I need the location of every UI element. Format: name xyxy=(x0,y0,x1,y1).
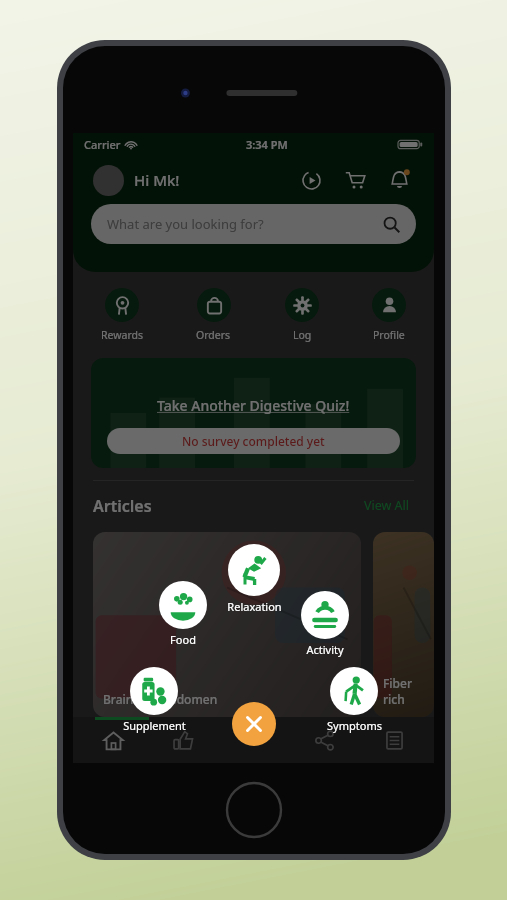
staticText: View All xyxy=(364,497,410,514)
button[interactable]: Share xyxy=(302,717,346,763)
staticText: Orders xyxy=(196,328,231,342)
staticText: Hi Mk! xyxy=(134,170,180,190)
button[interactable]: View All xyxy=(360,493,414,518)
staticText: Carrier xyxy=(84,137,121,152)
button[interactable] xyxy=(130,667,178,715)
button[interactable]: Orders xyxy=(192,288,235,342)
staticText: No survey completed yet xyxy=(182,433,325,449)
staticText: Rewards xyxy=(101,328,143,342)
staticText: Take Another Digestive Quiz! xyxy=(157,396,350,415)
staticText: Fiber rich xyxy=(383,675,424,707)
staticText: Log xyxy=(293,328,312,342)
button[interactable]: Cart xyxy=(340,165,370,195)
button[interactable] xyxy=(330,667,378,715)
button[interactable]: Close menu xyxy=(232,702,276,746)
button[interactable]: Fiber rich xyxy=(373,532,434,717)
button[interactable]: Profile photo xyxy=(93,165,124,196)
button[interactable] xyxy=(228,544,280,596)
button[interactable]: Take Another Digestive Quiz! xyxy=(91,358,416,468)
staticText: Articles xyxy=(93,495,152,517)
staticText: Supplement xyxy=(123,718,186,733)
button[interactable]: No survey completed yet xyxy=(107,428,400,454)
staticText: Food xyxy=(170,632,196,647)
button[interactable]: Likes xyxy=(161,717,205,763)
staticText: 3:34 PM xyxy=(246,137,288,152)
staticText: Relaxation xyxy=(227,599,282,614)
staticText: Activity xyxy=(306,642,344,657)
button[interactable]: Play tutorial xyxy=(296,165,326,195)
button[interactable]: Notifications xyxy=(384,165,414,195)
button[interactable]: Rewards xyxy=(97,288,147,342)
staticText: Brain and Abdomen xyxy=(103,691,218,707)
button[interactable]: Profile xyxy=(368,288,410,342)
staticText: Symptoms xyxy=(327,718,382,733)
button[interactable]: Notes xyxy=(372,717,416,763)
button[interactable]: Log xyxy=(281,288,323,342)
staticText: What are you looking for? xyxy=(107,215,264,233)
button[interactable]: Home xyxy=(91,717,135,763)
button[interactable] xyxy=(301,591,349,639)
staticText: Profile xyxy=(373,328,405,342)
button[interactable]: What are you looking for? xyxy=(91,204,416,244)
button[interactable]: Brain and Abdomen xyxy=(93,532,361,717)
button[interactable] xyxy=(159,581,207,629)
